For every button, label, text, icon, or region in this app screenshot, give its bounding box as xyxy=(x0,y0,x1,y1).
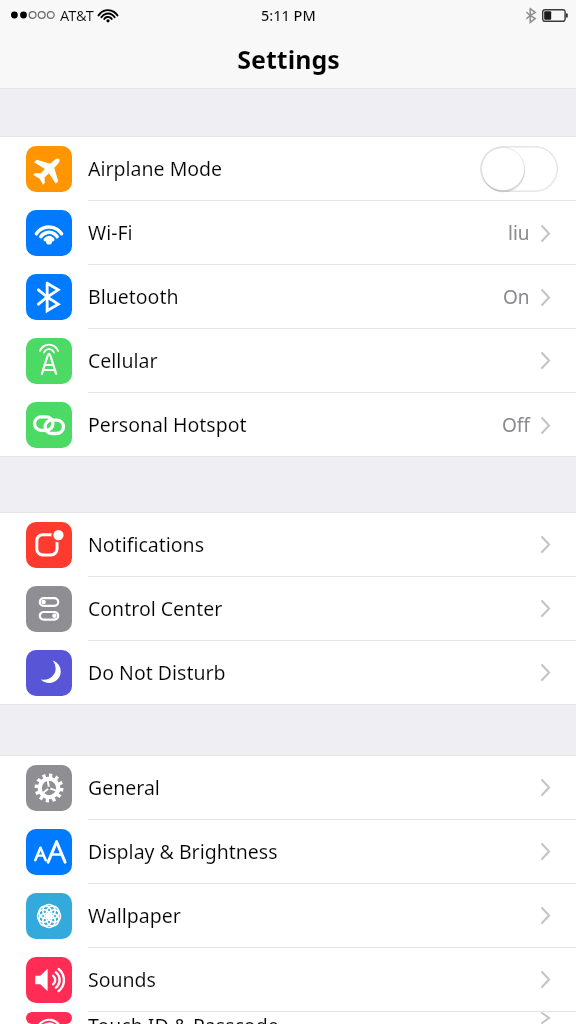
button[interactable]: Do Not Disturb xyxy=(0,641,576,704)
button[interactable]: Notifications xyxy=(0,513,576,576)
button[interactable]: Cellular xyxy=(0,329,576,392)
button[interactable]: Wallpaper xyxy=(0,884,576,947)
button[interactable]: General xyxy=(0,756,576,819)
button[interactable]: Airplane Mode xyxy=(0,137,576,200)
button[interactable]: Display & Brightness xyxy=(0,820,576,883)
staticText: Bluetooth xyxy=(88,283,179,310)
button[interactable]: Wi-Fi xyxy=(0,201,576,264)
button[interactable]: Control Center xyxy=(0,577,576,640)
staticText: Personal Hotspot xyxy=(88,411,247,438)
staticText: Cellular xyxy=(88,347,158,374)
button[interactable]: Personal Hotspot xyxy=(0,393,576,456)
staticText: Notifications xyxy=(88,531,204,558)
staticText: Off xyxy=(502,412,530,438)
staticText: Display & Brightness xyxy=(88,838,278,865)
button[interactable]: Touch ID & Passcode xyxy=(0,1012,576,1024)
staticText: Wi-Fi xyxy=(88,219,133,246)
staticText: AT&T xyxy=(60,5,94,25)
staticText: Do Not Disturb xyxy=(88,659,226,686)
staticText: Settings xyxy=(237,42,340,76)
staticText: Wallpaper xyxy=(88,902,181,929)
button[interactable]: Sounds xyxy=(0,948,576,1011)
staticText: Control Center xyxy=(88,595,223,622)
staticText: Sounds xyxy=(88,966,156,993)
staticText: General xyxy=(88,774,160,801)
staticText: 5:11 PM xyxy=(261,5,316,25)
staticText: Touch ID & Passcode xyxy=(88,1012,279,1024)
staticText: Airplane Mode xyxy=(88,155,223,182)
staticText: liu xyxy=(508,220,530,246)
button[interactable]: Bluetooth xyxy=(0,265,576,328)
staticText: On xyxy=(503,284,530,310)
